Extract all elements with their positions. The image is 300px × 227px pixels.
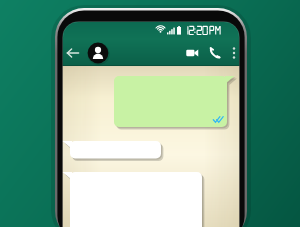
button[interactable]: Sent message bbox=[114, 76, 227, 127]
button[interactable]: Received message bbox=[70, 141, 161, 159]
button[interactable]: Contact profile bbox=[86, 42, 110, 64]
button[interactable]: More options bbox=[228, 43, 240, 63]
button[interactable]: Back bbox=[64, 42, 84, 64]
button[interactable]: Voice call bbox=[205, 43, 225, 63]
button[interactable]: Video call bbox=[182, 43, 203, 63]
